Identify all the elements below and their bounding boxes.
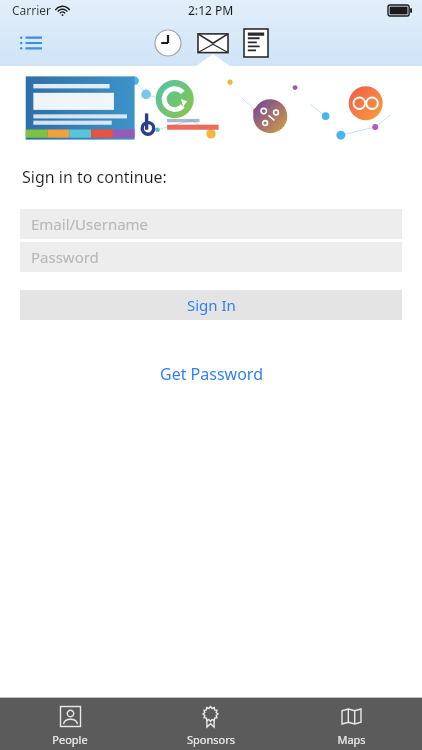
staticText: Password bbox=[31, 247, 99, 267]
button[interactable]: Sign In bbox=[20, 290, 402, 320]
button[interactable]: People bbox=[0, 698, 140, 750]
button[interactable]: Messages bbox=[195, 28, 231, 58]
button[interactable]: Password bbox=[20, 242, 402, 272]
staticText: Get Password bbox=[160, 363, 263, 385]
staticText: 2:12 PM bbox=[188, 2, 234, 18]
button[interactable]: Documents bbox=[241, 26, 271, 60]
button[interactable]: Maps bbox=[281, 698, 422, 750]
staticText: Sign in to continue: bbox=[22, 166, 167, 188]
button[interactable]: Get Password bbox=[148, 357, 275, 391]
button[interactable]: Schedule bbox=[151, 26, 185, 60]
staticText: People bbox=[52, 732, 88, 747]
staticText: Sponsors bbox=[187, 732, 235, 747]
staticText: Maps bbox=[337, 732, 366, 747]
button[interactable]: Sponsors bbox=[140, 698, 281, 750]
staticText: Carrier bbox=[12, 2, 52, 18]
button[interactable]: Email/Username bbox=[20, 209, 402, 239]
button[interactable]: Menu bbox=[14, 29, 48, 57]
staticText: Sign In bbox=[187, 295, 236, 315]
staticText: Email/Username bbox=[31, 214, 149, 234]
